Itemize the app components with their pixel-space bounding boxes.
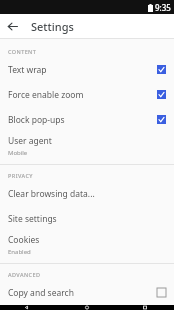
button[interactable]: User agent (0, 132, 174, 159)
staticText: PRIVACY (8, 172, 33, 179)
button[interactable]: Back (0, 14, 24, 38)
button[interactable]: Home (58, 305, 116, 310)
staticText: Block pop-ups (8, 114, 157, 126)
button[interactable]: Force enable zoom (0, 82, 174, 107)
staticText: ADVANCED (8, 271, 41, 278)
button[interactable]: Site settings (0, 206, 174, 231)
button[interactable]: Cookies (0, 231, 174, 258)
button[interactable]: Block pop-ups (0, 107, 174, 132)
button[interactable]: Text wrap (0, 57, 174, 82)
staticText: Cookies (8, 234, 40, 246)
staticText: Force enable zoom (8, 89, 157, 101)
staticText: Copy and search (8, 287, 157, 299)
button[interactable]: Back (0, 305, 58, 310)
button[interactable]: Recent apps (116, 305, 174, 310)
staticText: CONTENT (8, 48, 37, 55)
staticText: Text wrap (8, 64, 157, 76)
staticText: Site settings (8, 213, 57, 225)
button[interactable]: Copy and search (0, 280, 174, 305)
staticText: Mobile (8, 149, 28, 157)
staticText: User agent (8, 135, 52, 147)
staticText: Clear browsing data... (8, 188, 95, 200)
staticText: 9:35 (155, 2, 171, 13)
staticText: Enabled (8, 248, 31, 256)
staticText: Settings (31, 19, 74, 34)
button[interactable]: Clear browsing data... (0, 181, 174, 206)
